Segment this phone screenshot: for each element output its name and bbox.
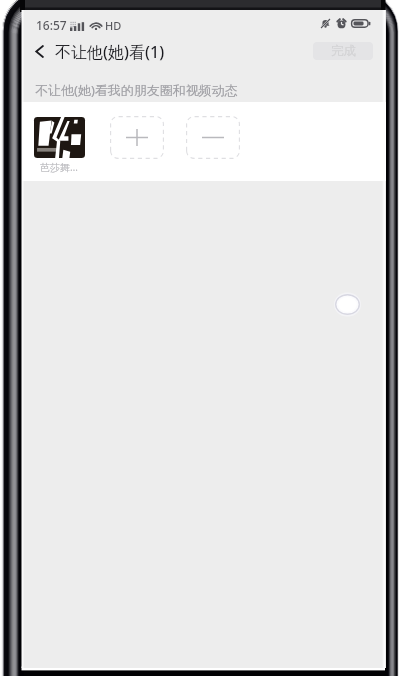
button[interactable]: Remove contact (186, 116, 240, 159)
staticText: 不让他(她)看我的朋友圈和视频动态 (35, 81, 238, 99)
staticText: 16:57 (36, 17, 67, 33)
staticText: 芭莎舞… (40, 160, 78, 174)
button[interactable]: 完成 (313, 42, 373, 60)
staticText: HD (105, 18, 122, 33)
button[interactable]: Add contact (110, 116, 164, 159)
staticText: 完成 (331, 43, 356, 59)
staticText: 不让他(她)看(1) (55, 41, 165, 63)
button[interactable]: Assistive ball (334, 292, 361, 317)
button[interactable]: Back (24, 31, 55, 72)
